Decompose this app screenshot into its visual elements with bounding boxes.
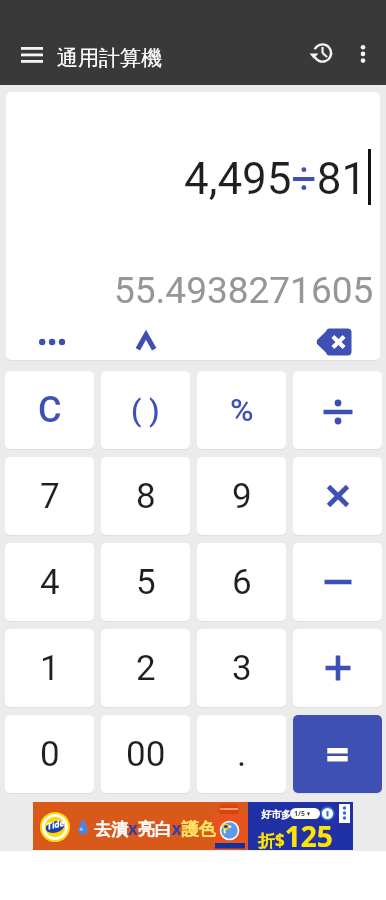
- button[interactable]: ( ): [101, 371, 190, 449]
- staticText: .: [237, 734, 247, 775]
- staticText: 通用計算機: [57, 45, 162, 71]
- button[interactable]: 7: [5, 457, 94, 535]
- staticText: 55.4938271605: [114, 269, 374, 312]
- button[interactable]: [13, 40, 51, 70]
- staticText: Tide: [45, 818, 65, 833]
- button[interactable]: [351, 43, 375, 71]
- staticText: 4: [40, 562, 60, 603]
- button[interactable]: 5: [101, 543, 190, 621]
- staticText: 6: [232, 562, 252, 603]
- staticText: 2: [136, 648, 156, 689]
- button[interactable]: [293, 715, 382, 793]
- button[interactable]: 9: [197, 457, 286, 535]
- button[interactable]: [28, 328, 76, 356]
- button[interactable]: [293, 371, 382, 449]
- staticText: C: [38, 389, 62, 431]
- button[interactable]: %: [197, 371, 286, 449]
- button[interactable]: Tide: [33, 802, 353, 850]
- button[interactable]: 3: [197, 629, 286, 707]
- button[interactable]: 2: [101, 629, 190, 707]
- staticText: 1: [40, 648, 60, 689]
- button[interactable]: [293, 543, 382, 621]
- button[interactable]: [293, 457, 382, 535]
- staticText: 8: [136, 476, 156, 517]
- staticText: 好市多: [261, 808, 291, 821]
- staticText: 9: [232, 476, 252, 517]
- button[interactable]: [293, 629, 382, 707]
- staticText: 5: [136, 562, 156, 603]
- staticText: 折$125: [258, 817, 333, 855]
- button[interactable]: [308, 322, 360, 362]
- button[interactable]: 8: [101, 457, 190, 535]
- staticText: 4,495÷81: [184, 153, 367, 205]
- staticText: 00: [126, 734, 166, 775]
- button[interactable]: 6: [197, 543, 286, 621]
- button[interactable]: 1: [5, 629, 94, 707]
- button[interactable]: [131, 328, 161, 356]
- staticText: 7: [40, 476, 60, 517]
- button[interactable]: [306, 37, 338, 69]
- staticText: 去漬x亮白x護色: [94, 817, 216, 840]
- button[interactable]: 0: [5, 715, 94, 793]
- button[interactable]: 00: [101, 715, 190, 793]
- staticText: 0: [40, 734, 60, 775]
- staticText: 3: [232, 648, 252, 689]
- button[interactable]: C: [5, 371, 94, 449]
- staticText: %: [230, 391, 254, 429]
- staticText: ( ): [131, 393, 160, 428]
- button[interactable]: .: [197, 715, 286, 793]
- button[interactable]: 4: [5, 543, 94, 621]
- staticText: 1/5 ▾: [294, 809, 311, 819]
